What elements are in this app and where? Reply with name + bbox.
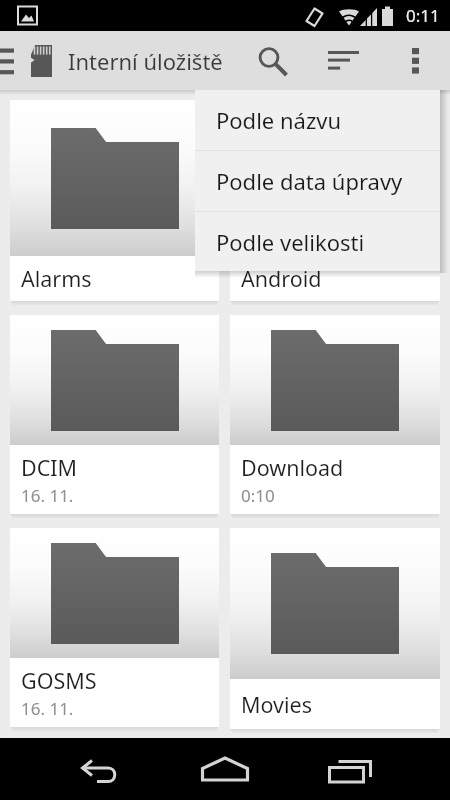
staticText: Alarms [21,264,92,293]
button[interactable]: Podle data úpravy [195,151,440,211]
button[interactable]: Home [195,746,255,792]
staticText: 16. 11. [21,484,74,507]
staticText: Android [241,264,322,293]
staticText: Podle názvu [216,105,342,135]
button[interactable]: DCIM [10,315,219,514]
staticText: DCIM [21,453,78,482]
staticText: 0:11 [406,4,440,27]
button[interactable]: Podle velikosti [195,212,440,271]
button[interactable]: Download [230,315,440,514]
button[interactable]: Sort [313,31,373,90]
staticText: Podle velikosti [216,227,365,257]
staticText: Download [241,453,344,482]
staticText: GOSMS [21,666,97,695]
staticText: 0:10 [241,484,275,507]
button[interactable]: Search [247,31,295,90]
staticText: Podle data úpravy [216,166,403,196]
button[interactable]: Alarms [10,100,219,301]
button[interactable]: Back [69,746,129,792]
button[interactable]: Recent apps [320,746,382,792]
staticText: Movies [241,690,312,719]
button[interactable]: Movies [230,528,440,729]
button[interactable]: More options [393,31,437,90]
button[interactable]: Android [230,100,440,301]
staticText: 16. 11. [21,697,74,720]
button[interactable]: Podle názvu [195,90,440,150]
staticText: Interní úložiště [68,46,223,76]
button[interactable]: Open navigation drawer [0,31,14,90]
button[interactable]: GOSMS [10,528,219,727]
